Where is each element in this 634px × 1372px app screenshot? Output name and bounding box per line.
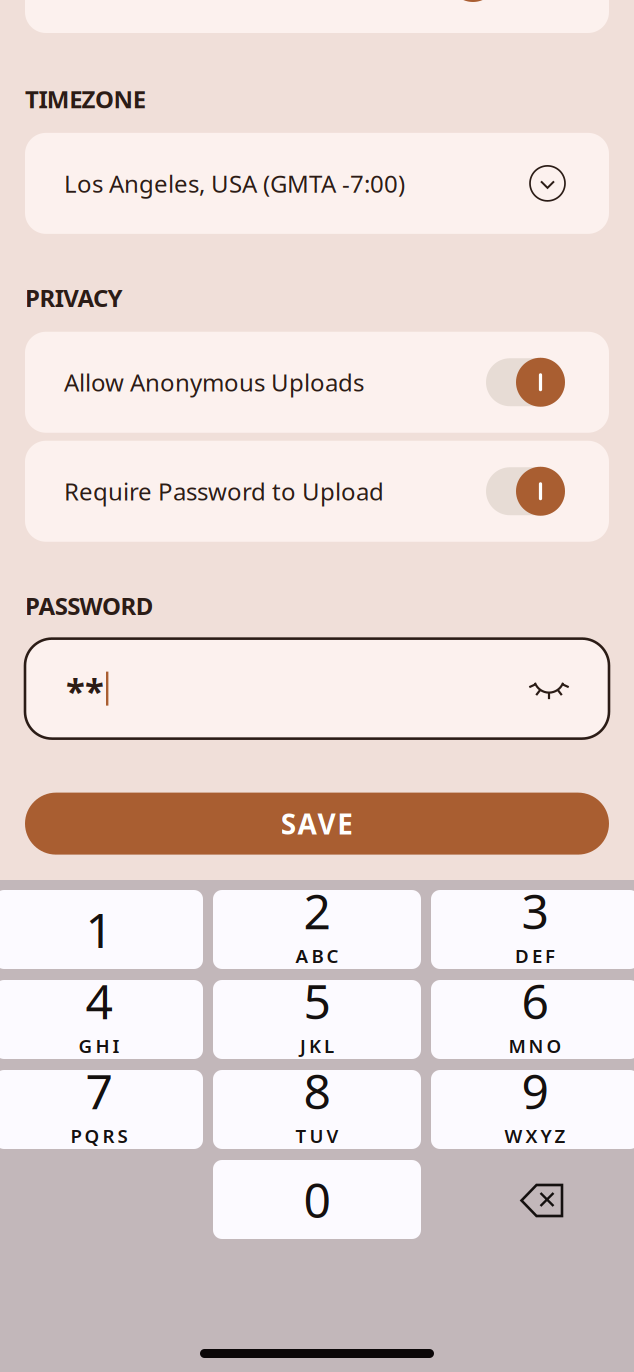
staticText: 3 (521, 879, 548, 942)
staticText: TIMEZONE (25, 83, 146, 115)
button[interactable]: 3 (431, 890, 634, 969)
staticText: 9 (521, 1059, 548, 1122)
staticText: SAVE (281, 805, 353, 842)
staticText: P Q R S (70, 1123, 127, 1148)
button[interactable]: 8 (213, 1070, 421, 1149)
staticText: 7 (85, 1059, 112, 1122)
staticText: T U V (295, 1123, 338, 1148)
staticText: 4 (85, 969, 112, 1032)
button[interactable]: 0 (213, 1160, 421, 1239)
staticText: 5 (303, 969, 330, 1032)
button[interactable]: SAVE (25, 793, 609, 855)
button[interactable]: Delete (431, 1160, 634, 1239)
button[interactable]: 1 (0, 890, 203, 969)
staticText: 8 (303, 1059, 330, 1122)
button[interactable]: 4 (0, 980, 203, 1059)
button[interactable]: 2 (213, 890, 421, 969)
staticText: 2 (303, 879, 330, 942)
staticText: D E F (515, 943, 555, 968)
button[interactable]: 9 (431, 1070, 634, 1149)
staticText: 1 (85, 898, 112, 961)
staticText: PRIVACY (25, 282, 122, 314)
staticText: M N O (508, 1033, 561, 1058)
staticText: W X Y Z (504, 1123, 565, 1148)
button[interactable]: Password (25, 639, 609, 739)
staticText: J K L (300, 1033, 334, 1058)
staticText: G H I (78, 1033, 119, 1058)
button[interactable]: 5 (213, 980, 421, 1059)
button[interactable]: Los Angeles, USA (GMTA -7:00) (25, 133, 609, 234)
staticText: PASSWORD (25, 590, 154, 622)
staticText: ** (66, 668, 104, 714)
button[interactable]: Require Password to Upload (25, 441, 609, 542)
button[interactable]: 6 (431, 980, 634, 1059)
staticText: 0 (303, 1168, 330, 1231)
button[interactable]: 7 (0, 1070, 203, 1149)
staticText: A B C (295, 943, 338, 968)
staticText: Los Angeles, USA (GMTA -7:00) (64, 167, 405, 199)
button[interactable]: Allow Anonymous Uploads (25, 332, 609, 433)
staticText: Allow Anonymous Uploads (64, 366, 364, 398)
staticText: 6 (521, 969, 548, 1032)
staticText: Require Password to Upload (64, 475, 384, 507)
